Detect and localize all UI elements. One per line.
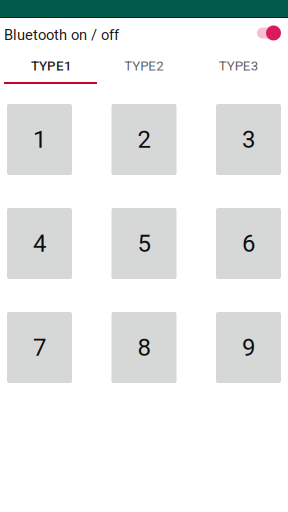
staticText: 9 [242, 333, 255, 361]
staticText: 6 [242, 229, 255, 257]
button[interactable]: 7 [7, 312, 72, 383]
button[interactable]: Bluetooth on or off [257, 20, 281, 46]
staticText: 5 [137, 229, 150, 257]
button[interactable]: TYPE2 [96, 48, 191, 84]
button[interactable]: 3 [216, 104, 281, 175]
button[interactable]: 5 [111, 208, 176, 279]
staticText: 7 [33, 333, 46, 361]
button[interactable]: TYPE1 [2, 48, 96, 84]
staticText: Bluetooth on / off [4, 26, 119, 44]
staticText: 2 [137, 125, 150, 153]
button[interactable]: 4 [7, 208, 72, 279]
staticText: 8 [137, 333, 150, 361]
staticText: 3 [242, 125, 255, 153]
button[interactable]: 1 [7, 104, 72, 175]
button[interactable]: 9 [216, 312, 281, 383]
staticText: TYPE2 [124, 58, 163, 74]
button[interactable]: 2 [111, 104, 176, 175]
staticText: 4 [33, 229, 46, 257]
staticText: 1 [33, 125, 46, 153]
button[interactable]: TYPE3 [191, 48, 285, 84]
button[interactable]: 8 [111, 312, 176, 383]
staticText: TYPE1 [31, 58, 72, 74]
staticText: TYPE3 [219, 58, 258, 74]
button[interactable]: 6 [216, 208, 281, 279]
